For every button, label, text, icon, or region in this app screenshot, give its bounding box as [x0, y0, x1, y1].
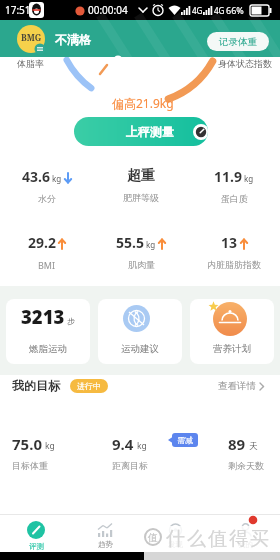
staticText: 4G: [214, 5, 225, 16]
button[interactable]: 超重: [123, 167, 159, 203]
button[interactable]: 记录体重: [207, 32, 269, 51]
staticText: kg: [244, 173, 254, 184]
staticText: 43.6: [22, 167, 50, 186]
staticText: 剩余天数: [228, 460, 264, 471]
staticText: 什么值得买: [165, 527, 270, 551]
button[interactable]: 3213: [6, 299, 90, 364]
button[interactable]: 上秤测量: [74, 117, 208, 146]
staticText: 进行中: [77, 381, 101, 391]
staticText: 肥胖等级: [123, 192, 159, 203]
staticText: 身体状态指数: [218, 58, 272, 69]
staticText: 我的: [238, 540, 253, 549]
button[interactable]: 13: [207, 233, 261, 270]
staticText: 4G: [192, 5, 203, 16]
button[interactable]: 运动建议: [98, 299, 182, 364]
staticText: 肌肉量: [128, 259, 155, 270]
button[interactable]: 11.9: [214, 167, 254, 204]
staticText: kg: [45, 440, 55, 452]
staticText: 上秤测量: [126, 124, 174, 139]
staticText: 燃脂运动: [29, 343, 67, 355]
button[interactable]: 评测: [18, 521, 54, 551]
staticText: 不满格: [55, 32, 91, 47]
staticText: 水分: [38, 193, 56, 204]
staticText: 00:00:04: [88, 3, 128, 17]
staticText: 目标体重: [12, 460, 48, 471]
staticText: 11.9: [214, 167, 242, 186]
staticText: 记录体重: [219, 36, 257, 48]
staticText: 需减: [177, 435, 193, 445]
staticText: 蛋白质: [221, 193, 248, 204]
button[interactable]: 我的: [227, 523, 263, 549]
button[interactable]: 43.6: [22, 167, 72, 204]
button[interactable]: 发现: [157, 523, 193, 549]
staticText: 评测: [29, 542, 44, 551]
staticText: 发现: [168, 540, 183, 549]
staticText: 营养计划: [213, 343, 251, 355]
staticText: 89: [228, 434, 246, 454]
button[interactable]: 趋势: [87, 523, 123, 549]
staticText: 66%: [226, 4, 244, 16]
staticText: 值: [148, 531, 158, 544]
staticText: 13: [221, 233, 238, 252]
staticText: 17:51: [5, 3, 31, 17]
staticText: 内脏脂肪指数: [207, 259, 261, 270]
staticText: 运动建议: [121, 343, 159, 355]
staticText: 55.5: [116, 233, 144, 252]
staticText: BMG: [21, 32, 42, 44]
staticText: 3213: [21, 304, 65, 329]
staticText: 天: [249, 441, 258, 452]
staticText: 9.4: [112, 434, 134, 454]
staticText: 偏高21.9kg: [112, 95, 174, 111]
button[interactable]: 55.5: [116, 233, 166, 270]
staticText: 趋势: [98, 540, 113, 549]
staticText: kg: [137, 440, 147, 452]
staticText: 步: [67, 316, 75, 326]
button[interactable]: 29.2: [28, 233, 66, 271]
staticText: BMI: [38, 259, 56, 271]
button[interactable]: 查看详情: [218, 380, 265, 392]
staticText: 距离目标: [112, 460, 148, 471]
staticText: 体脂率: [17, 58, 44, 69]
staticText: kg: [52, 173, 62, 184]
staticText: 75.0: [12, 434, 42, 454]
staticText: kg: [146, 239, 156, 250]
staticText: 我的目标: [12, 378, 60, 393]
staticText: 29.2: [28, 233, 56, 252]
staticText: 查看详情: [218, 380, 256, 392]
button[interactable]: 进行中: [70, 379, 108, 393]
staticText: 超重: [127, 167, 155, 185]
button[interactable]: 营养计划: [190, 299, 274, 364]
